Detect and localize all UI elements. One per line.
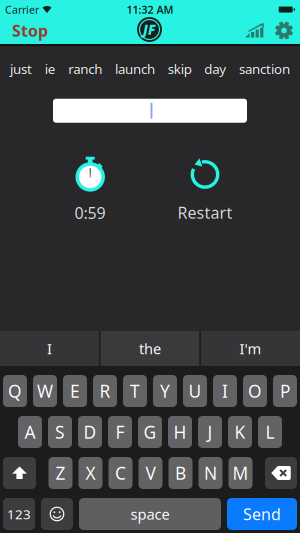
staticText: Restart <box>177 202 232 223</box>
staticText: K <box>234 420 245 443</box>
button[interactable]: Emoji <box>41 498 73 530</box>
button[interactable]: G <box>138 416 162 448</box>
button[interactable]: I <box>0 331 99 366</box>
button[interactable]: Y <box>153 375 177 407</box>
staticText: H <box>173 420 186 443</box>
button[interactable]: Delete <box>265 457 297 489</box>
button[interactable]: the <box>100 331 199 366</box>
button[interactable]: W <box>33 375 57 407</box>
staticText: skip <box>168 60 192 78</box>
button[interactable]: Restart <box>177 157 232 223</box>
staticText: F <box>115 420 124 443</box>
button[interactable]: T <box>123 375 147 407</box>
staticText: Send <box>243 503 281 525</box>
button[interactable]: J <box>198 416 222 448</box>
staticText: L <box>265 420 274 443</box>
staticText: E <box>70 379 80 402</box>
staticText: JF <box>143 21 156 38</box>
button[interactable]: S <box>48 416 72 448</box>
button[interactable]: B <box>168 457 192 489</box>
staticText: P <box>280 379 290 402</box>
staticText: W <box>37 379 53 402</box>
staticText: Stop <box>12 20 48 41</box>
button[interactable]: U <box>183 375 207 407</box>
button[interactable]: Z <box>48 457 72 489</box>
staticText: just <box>10 60 32 78</box>
button[interactable]: I <box>213 375 237 407</box>
staticText: sanction <box>239 60 290 78</box>
button[interactable]: K <box>228 416 252 448</box>
button[interactable]: Type the words <box>53 99 247 123</box>
staticText: 123 <box>7 505 31 523</box>
staticText: Q <box>8 379 22 402</box>
button[interactable]: C <box>108 457 132 489</box>
staticText: launch <box>115 60 155 78</box>
button[interactable]: F <box>108 416 132 448</box>
button[interactable]: Stop <box>12 20 48 41</box>
staticText: day <box>204 60 226 78</box>
staticText: X <box>85 461 95 484</box>
staticText: 11:32 AM <box>126 2 173 17</box>
staticText: the <box>139 339 161 358</box>
staticText: B <box>175 461 186 484</box>
button[interactable]: Settings <box>275 21 293 39</box>
staticText: Y <box>160 379 170 402</box>
staticText: O <box>248 379 262 402</box>
button[interactable]: Timer <box>72 157 107 190</box>
button[interactable]: V <box>138 457 162 489</box>
staticText: 0:59 <box>74 202 105 223</box>
staticText: I'm <box>239 339 261 358</box>
button[interactable]: O <box>243 375 267 407</box>
staticText: C <box>115 461 126 484</box>
button[interactable]: L <box>258 416 282 448</box>
staticText: ranch <box>68 60 102 78</box>
staticText: V <box>145 461 155 484</box>
button[interactable]: D <box>78 416 102 448</box>
staticText: A <box>24 420 35 443</box>
button[interactable]: space <box>79 498 221 530</box>
button[interactable]: Send <box>227 498 297 530</box>
button[interactable]: E <box>63 375 87 407</box>
staticText: space <box>130 504 169 524</box>
button[interactable]: X <box>78 457 102 489</box>
staticText: N <box>204 461 217 484</box>
staticText: T <box>130 379 140 402</box>
staticText: ie <box>45 60 56 78</box>
button[interactable]: R <box>93 375 117 407</box>
staticText: I <box>222 379 228 402</box>
staticText: D <box>83 420 96 443</box>
button[interactable]: H <box>168 416 192 448</box>
staticText: Z <box>55 461 65 484</box>
button[interactable]: 123 <box>3 498 35 530</box>
button[interactable]: I'm <box>201 331 300 366</box>
button[interactable]: Shift <box>3 457 36 489</box>
button[interactable]: A <box>18 416 42 448</box>
button[interactable]: N <box>198 457 222 489</box>
staticText: I <box>47 339 52 358</box>
staticText: S <box>55 420 65 443</box>
button[interactable]: Q <box>3 375 27 407</box>
staticText: R <box>99 379 110 402</box>
button[interactable]: M <box>228 457 252 489</box>
button[interactable]: Statistics <box>245 23 264 38</box>
staticText: J <box>207 420 212 443</box>
staticText: U <box>188 379 201 402</box>
staticText: Carrier <box>5 2 39 17</box>
button[interactable]: P <box>273 375 297 407</box>
staticText: G <box>143 420 156 443</box>
staticText: M <box>232 461 248 484</box>
